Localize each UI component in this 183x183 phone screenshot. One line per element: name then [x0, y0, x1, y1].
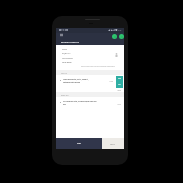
staticText: 12:30 [117, 29, 122, 31]
staticText: XL JOL 911 [62, 52, 71, 54]
staticText: The Landmark Hotel, 222 Marylebone Road … [63, 100, 97, 102]
staticText: BOOKING DETAILS [61, 41, 80, 44]
button[interactable]: NAV [116, 82, 123, 88]
button[interactable]: POB [56, 138, 102, 149]
staticText: Anne Devlin [62, 61, 72, 63]
staticText: DROP OFF [61, 94, 69, 96]
button[interactable]: MENU [102, 138, 124, 149]
button[interactable]: Call passenger [112, 34, 117, 39]
button[interactable]: Message passenger [119, 34, 124, 39]
staticText: Lead Passenger [62, 57, 73, 59]
button[interactable]: MAP [116, 76, 123, 82]
staticText: NAV [118, 84, 121, 86]
staticText: POB [77, 142, 81, 145]
staticText: 11:30 [109, 80, 113, 82]
staticText: PICK UP [61, 72, 67, 74]
staticText: 5RD [63, 103, 66, 105]
staticText: MENU [110, 143, 116, 145]
button[interactable]: Passenger details [115, 53, 118, 57]
staticText: 12:45 [117, 89, 121, 91]
staticText: 13:05 [117, 103, 121, 105]
button[interactable]: Menu [59, 33, 63, 36]
staticText: Swithland south M3 5RD [63, 81, 80, 83]
staticText: Crown Manchester, Unit 2, Trump st, [63, 78, 89, 80]
staticText: MAP [118, 78, 121, 80]
staticText: Vehicle [62, 48, 67, 50]
staticText: view booking notes and any passenger inf… [81, 65, 115, 67]
